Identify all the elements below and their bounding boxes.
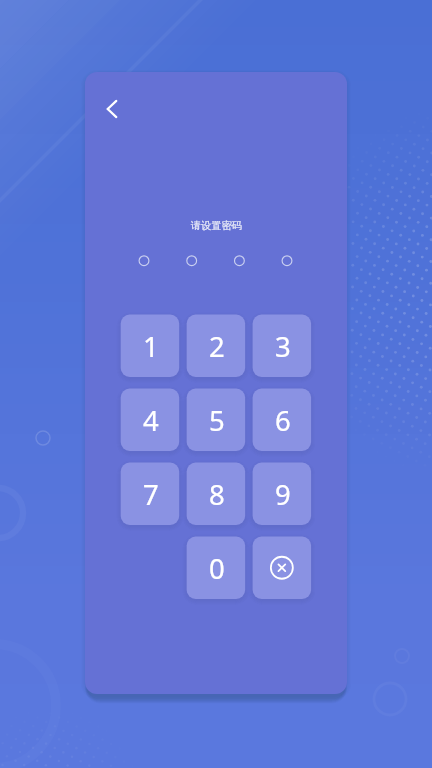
- staticText: 4: [143, 402, 159, 439]
- button[interactable]: Delete: [253, 537, 312, 599]
- button[interactable]: 1: [121, 315, 180, 377]
- staticText: 请设置密码: [191, 219, 242, 232]
- button[interactable]: 7: [121, 463, 180, 525]
- staticText: 7: [143, 476, 159, 513]
- button[interactable]: 8: [187, 463, 246, 525]
- staticText: 3: [275, 328, 291, 365]
- button[interactable]: 9: [253, 463, 312, 525]
- button[interactable]: 6: [253, 389, 312, 451]
- staticText: 2: [209, 328, 225, 365]
- button[interactable]: Back: [92, 89, 132, 129]
- button[interactable]: 5: [187, 389, 246, 451]
- staticText: 9: [275, 476, 291, 513]
- staticText: 5: [209, 402, 225, 439]
- button[interactable]: 3: [253, 315, 312, 377]
- button[interactable]: 0: [187, 537, 246, 599]
- staticText: 0: [209, 550, 225, 587]
- staticText: 6: [275, 402, 291, 439]
- staticText: 1: [143, 328, 159, 365]
- button[interactable]: 2: [187, 315, 246, 377]
- button[interactable]: 4: [121, 389, 180, 451]
- staticText: 8: [209, 476, 225, 513]
